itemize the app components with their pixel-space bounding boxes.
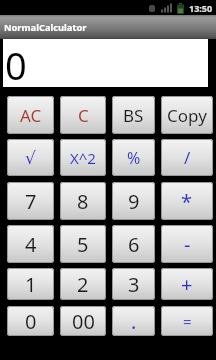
button[interactable]: = — [161, 306, 213, 336]
button[interactable]: 8 — [60, 182, 106, 220]
staticText: √ — [25, 148, 36, 168]
button[interactable]: C — [60, 96, 106, 134]
button[interactable]: 0 — [7, 306, 54, 336]
staticText: 1 — [25, 271, 37, 298]
button[interactable]: - — [161, 225, 213, 263]
staticText: 2 — [77, 271, 89, 298]
staticText: % — [127, 147, 141, 169]
staticText: = — [183, 311, 192, 331]
staticText: - — [184, 231, 191, 258]
button[interactable]: 7 — [7, 182, 54, 220]
staticText: NormalCalculator — [4, 21, 87, 34]
button[interactable]: 6 — [112, 225, 155, 263]
staticText: 0 — [25, 308, 37, 335]
button[interactable]: 5 — [60, 225, 106, 263]
button[interactable]: . — [112, 306, 155, 336]
button[interactable]: √ — [7, 139, 54, 176]
staticText: 3 — [128, 271, 140, 298]
button[interactable]: / — [161, 139, 213, 176]
staticText: BS — [123, 104, 144, 127]
button[interactable]: Copy — [161, 96, 213, 134]
staticText: . — [131, 308, 137, 335]
staticText: 13:50 — [189, 2, 213, 14]
staticText: Copy — [167, 104, 207, 127]
button[interactable]: AC — [7, 96, 54, 134]
staticText: 8 — [77, 188, 89, 215]
staticText: 00 — [72, 308, 95, 335]
button[interactable]: 2 — [60, 268, 106, 300]
staticText: 5 — [77, 231, 89, 258]
staticText: C — [78, 104, 89, 127]
button[interactable]: % — [112, 139, 155, 176]
button[interactable]: 3 — [112, 268, 155, 300]
staticText: 7 — [25, 188, 37, 215]
staticText: AC — [20, 104, 42, 127]
staticText: 6 — [128, 231, 140, 258]
staticText: 0 — [5, 39, 27, 87]
staticText: * — [181, 188, 193, 215]
staticText: 9 — [128, 188, 140, 215]
button[interactable]: + — [161, 268, 213, 300]
button[interactable]: 00 — [60, 306, 106, 336]
staticText: X^2 — [70, 148, 96, 168]
button[interactable]: 1 — [7, 268, 54, 300]
staticText: + — [181, 271, 193, 298]
button[interactable]: 9 — [112, 182, 155, 220]
staticText: / — [184, 146, 191, 169]
button[interactable]: X^2 — [60, 139, 106, 176]
staticText: 4 — [25, 231, 37, 258]
button[interactable]: BS — [112, 96, 155, 134]
button[interactable]: * — [161, 182, 213, 220]
button[interactable]: 4 — [7, 225, 54, 263]
